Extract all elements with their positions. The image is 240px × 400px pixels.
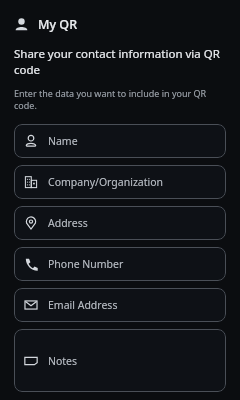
- staticText: Enter the data you want to include in yo…: [14, 87, 226, 112]
- staticText: Share your contact information via QR co…: [14, 46, 226, 78]
- staticText: Email Address: [48, 298, 118, 312]
- staticText: My QR: [38, 16, 78, 33]
- button[interactable]: Notes: [14, 329, 226, 392]
- button[interactable]: Name: [14, 124, 226, 158]
- staticText: Phone Number: [48, 257, 124, 271]
- staticText: Address: [48, 216, 88, 230]
- other: Account: [14, 17, 29, 32]
- staticText: Notes: [48, 354, 78, 368]
- staticText: Name: [48, 134, 78, 148]
- button[interactable]: Address: [14, 206, 226, 240]
- button[interactable]: Company/Organization: [14, 165, 226, 199]
- button[interactable]: Phone Number: [14, 247, 226, 281]
- button[interactable]: Email Address: [14, 288, 226, 322]
- staticText: Company/Organization: [48, 175, 164, 189]
- button[interactable]: Account: [14, 16, 226, 33]
